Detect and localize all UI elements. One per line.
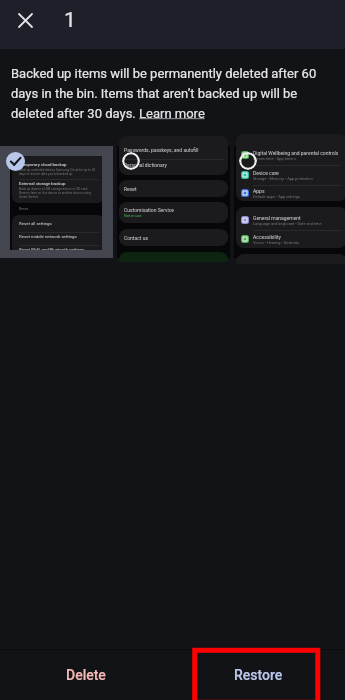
staticText: Accessibility — [253, 234, 281, 240]
staticText: Reset — [124, 186, 137, 192]
staticText: Reset — [19, 207, 29, 211]
staticText: 1 — [64, 8, 76, 33]
other: Selected — [6, 152, 25, 171]
staticText: Personal dictionary — [124, 162, 167, 168]
staticText: Not in use — [124, 213, 142, 218]
staticText: Reset mobile network settings — [19, 234, 77, 239]
staticText: Reset all settings — [19, 221, 52, 226]
staticText: Reset Wi-Fi and Bluetooth settings — [19, 247, 85, 250]
button[interactable]: Temporary cloud backup — [0, 146, 113, 258]
button[interactable]: Restore — [172, 650, 345, 700]
staticText: Customisation Service — [124, 207, 174, 213]
staticText: Default apps • App settings — [253, 194, 300, 199]
button[interactable]: Close — [5, 0, 46, 41]
staticText: Restore — [234, 667, 283, 683]
staticText: Delete — [66, 667, 106, 683]
staticText: Screen time • App timers — [253, 156, 296, 161]
staticText: Backed up items will be permanently dele… — [11, 66, 333, 121]
staticText: Digital Wellbeing and parental controls — [253, 150, 339, 156]
staticText: Temporary cloud backup — [19, 162, 67, 167]
button[interactable]: Select — [239, 152, 257, 170]
staticText: General management — [253, 215, 301, 221]
staticText: Apps — [253, 188, 265, 194]
button[interactable]: Passwords, passkeys, and autofill — [117, 146, 230, 258]
staticText: Contact us — [124, 235, 149, 241]
staticText: Device care — [253, 170, 279, 176]
button[interactable]: Delete — [0, 650, 172, 700]
staticText: Vision • Hearing • Dexterity — [253, 240, 300, 245]
button[interactable]: Select — [122, 152, 140, 170]
button[interactable]: Digital Wellbeing and parental controls — [234, 146, 345, 258]
staticText: Language and keyboard • Date and time — [253, 221, 322, 226]
staticText: Storage • Memory • App protection — [253, 176, 313, 181]
staticText: Passwords, passkeys, and autofill — [124, 147, 199, 153]
staticText: External storage backup — [19, 181, 66, 186]
staticText: Back up unlimited data to Samsung Cloud … — [19, 168, 96, 176]
staticText: Back up data to a USB storage device or … — [19, 187, 92, 199]
